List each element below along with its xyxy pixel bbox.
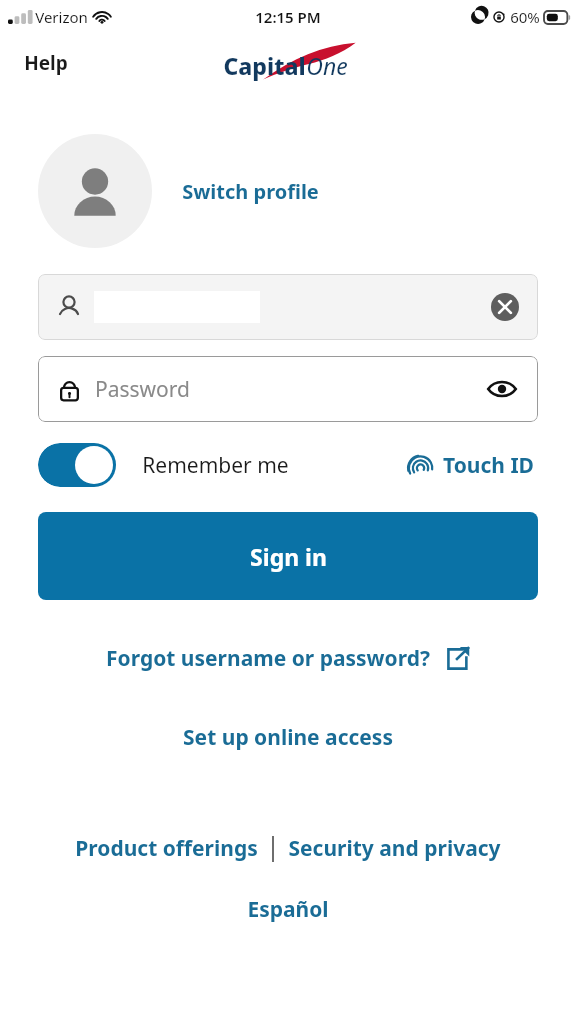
button[interactable]: Clear username [38,274,538,340]
staticText: Password [95,375,190,404]
button[interactable]: Clear username [490,292,520,322]
button[interactable]: Profile avatar [38,134,152,248]
staticText: Touch ID [443,451,534,480]
button[interactable]: Set up online access [177,717,399,758]
staticText: Set up online access [183,723,393,752]
staticText: Security and privacy [288,834,501,863]
staticText: Help [24,50,68,76]
button[interactable]: Sign in [38,512,538,600]
button[interactable]: Product offerings [71,828,262,869]
staticText: Verizon [35,7,88,27]
staticText: Forgot username or password? [106,644,430,673]
staticText: Capital [223,50,306,81]
staticText: Switch profile [182,178,319,205]
staticText: One [306,50,348,81]
button[interactable]: Forgot username or password? [100,638,476,679]
staticText: 60% [510,7,540,27]
staticText: Sign in [250,541,327,572]
button[interactable]: Help [12,44,80,82]
staticText: Product offerings [75,834,258,863]
button[interactable]: Switch profile [178,172,323,211]
staticText: 12:15 PM [255,7,321,27]
button[interactable]: Español [241,889,335,930]
staticText: Español [247,895,329,924]
button[interactable]: Password [38,356,538,422]
staticText: Remember me [142,451,289,480]
button[interactable]: Touch ID [403,445,538,486]
button[interactable]: Security and privacy [284,828,505,869]
button[interactable]: Show password [484,371,520,407]
button[interactable]: Remember me [38,443,289,487]
